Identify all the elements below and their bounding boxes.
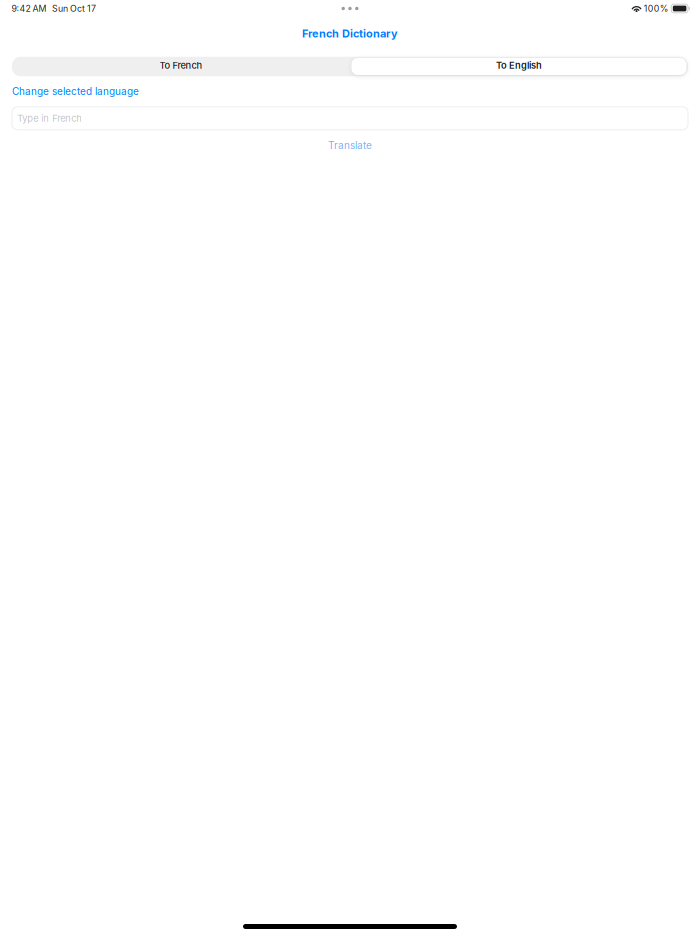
staticText: 9:42 AM: [11, 3, 46, 14]
staticText: Change selected language: [12, 85, 139, 97]
button[interactable]: Change selected language: [0, 76, 151, 97]
button[interactable]: Translate: [0, 130, 700, 151]
button[interactable]: To French: [12, 57, 350, 76]
staticText: To French: [159, 60, 202, 71]
staticText: To English: [496, 60, 542, 71]
staticText: Translate: [328, 139, 372, 151]
button[interactable]: To English: [350, 57, 688, 76]
staticText: 100%: [644, 3, 669, 14]
staticText: Type in French: [17, 113, 82, 124]
staticText: French Dictionary: [302, 27, 398, 40]
staticText: Sun Oct 17: [52, 3, 96, 14]
